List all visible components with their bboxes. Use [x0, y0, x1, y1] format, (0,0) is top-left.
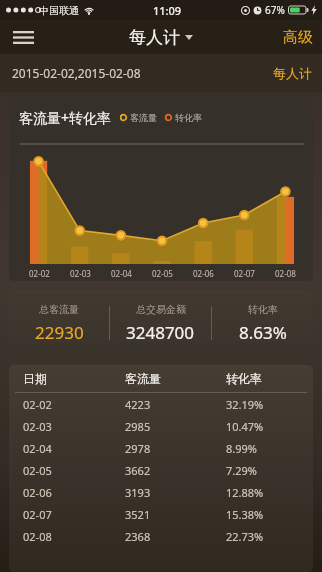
- button[interactable]: Menu: [4, 20, 42, 54]
- staticText: 客流量: [125, 371, 161, 386]
- staticText: 3521: [125, 507, 151, 522]
- staticText: 67%: [265, 3, 285, 17]
- button[interactable]: 02-05: [9, 459, 313, 481]
- staticText: 02-07: [23, 507, 52, 522]
- staticText: 中国联通: [39, 4, 79, 17]
- staticText: 11:09: [153, 3, 182, 18]
- staticText: 客流量+转化率: [19, 108, 112, 127]
- staticText: 3193: [125, 485, 151, 500]
- staticText: 总客流量: [39, 303, 79, 316]
- button[interactable]: 每人计: [263, 59, 322, 87]
- staticText: 2368: [125, 529, 151, 544]
- staticText: 15.38%: [226, 507, 264, 522]
- staticText: 2015-02-02,2015-02-08: [12, 65, 141, 81]
- staticText: 02-02: [23, 397, 52, 412]
- staticText: 02-04: [111, 268, 132, 279]
- staticText: 10.47%: [226, 419, 264, 434]
- staticText: 总交易金额: [136, 303, 186, 316]
- staticText: 02-06: [23, 485, 52, 500]
- staticText: 02-07: [234, 268, 255, 279]
- staticText: 02-02: [29, 268, 50, 279]
- staticText: 日期: [23, 371, 47, 386]
- staticText: 2985: [125, 419, 151, 434]
- staticText: 4223: [125, 397, 151, 412]
- button[interactable]: 每人计: [125, 23, 197, 52]
- staticText: 3662: [125, 463, 151, 478]
- button[interactable]: 总客流量: [9, 290, 313, 356]
- button[interactable]: 02-08: [9, 525, 313, 547]
- staticText: 8.63%: [239, 321, 287, 344]
- button[interactable]: 高级: [274, 22, 322, 53]
- staticText: 客流量: [130, 112, 157, 123]
- staticText: 02-03: [23, 419, 52, 434]
- staticText: 每人计: [129, 27, 180, 48]
- staticText: 3248700: [126, 321, 195, 344]
- staticText: 22930: [35, 321, 84, 344]
- button[interactable]: 02-03: [9, 415, 313, 437]
- button[interactable]: 02-06: [9, 481, 313, 503]
- staticText: 32.19%: [226, 397, 264, 412]
- button[interactable]: 02-04: [9, 437, 313, 459]
- staticText: 7.29%: [226, 463, 257, 478]
- staticText: 02-04: [23, 441, 52, 456]
- staticText: 高级: [283, 28, 313, 47]
- staticText: 每人计: [273, 65, 312, 81]
- button[interactable]: 客流量+转化率: [9, 99, 313, 281]
- staticText: 02-03: [70, 268, 91, 279]
- staticText: 02-06: [193, 268, 214, 279]
- staticText: 02-05: [23, 463, 52, 478]
- staticText: 转化率: [226, 371, 262, 386]
- staticText: 22.73%: [226, 529, 264, 544]
- staticText: 转化率: [248, 303, 278, 316]
- button[interactable]: 02-02: [9, 393, 313, 415]
- staticText: 8.99%: [226, 441, 257, 456]
- staticText: 转化率: [175, 112, 202, 123]
- staticText: 12.88%: [226, 485, 264, 500]
- staticText: 2978: [125, 441, 151, 456]
- staticText: 02-08: [23, 529, 52, 544]
- button[interactable]: 02-07: [9, 503, 313, 525]
- staticText: 02-08: [275, 268, 296, 279]
- staticText: 02-05: [152, 268, 173, 279]
